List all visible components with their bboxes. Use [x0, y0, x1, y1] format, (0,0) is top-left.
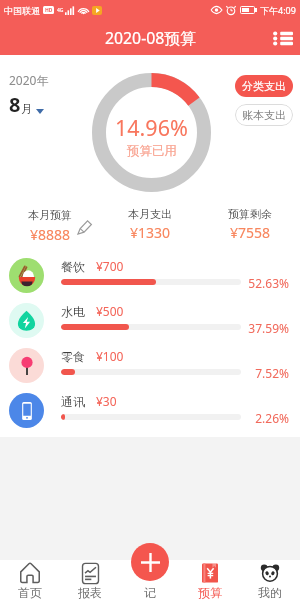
- staticText: 52.63%: [248, 275, 289, 291]
- button[interactable]: 水电: [0, 298, 300, 343]
- button[interactable]: 预算剩余: [200, 196, 300, 253]
- staticText: 中国联通: [4, 5, 40, 16]
- button[interactable]: 本月支出: [100, 196, 200, 253]
- button[interactable]: 分类支出: [235, 75, 293, 97]
- staticText: 分类支出: [242, 79, 286, 93]
- staticText: 首页: [18, 585, 42, 600]
- staticText: 下午4:09: [260, 4, 296, 16]
- button[interactable]: 零食: [0, 343, 300, 388]
- staticText: 2.26%: [255, 410, 289, 426]
- staticText: 本月预算: [28, 208, 72, 222]
- staticText: 账本支出: [242, 108, 286, 122]
- staticText: 我的: [258, 585, 282, 600]
- button[interactable]: Menu: [269, 24, 297, 52]
- staticText: 4G: [57, 7, 64, 14]
- staticText: 本月支出: [128, 207, 172, 221]
- button[interactable]: 首页: [0, 560, 60, 600]
- staticText: ¥7558: [230, 223, 271, 242]
- staticText: 通讯: [61, 394, 85, 409]
- staticText: 8: [9, 91, 21, 118]
- button[interactable]: 预算: [180, 560, 240, 600]
- staticText: HD: [45, 7, 53, 14]
- staticText: ¥100: [96, 348, 124, 364]
- staticText: 餐饮: [61, 259, 85, 274]
- button[interactable]: 餐饮: [0, 253, 300, 298]
- staticText: 2020年: [9, 72, 49, 88]
- staticText: ¥8888: [30, 225, 71, 244]
- button[interactable]: 通讯: [0, 388, 300, 433]
- button[interactable]: 报表: [60, 560, 120, 600]
- staticText: ¥1330: [130, 223, 171, 242]
- staticText: 预算: [198, 585, 222, 600]
- staticText: 37.59%: [248, 320, 289, 336]
- staticText: 零食: [61, 349, 85, 364]
- staticText: 水电: [61, 304, 85, 319]
- button[interactable]: 记: [120, 560, 180, 600]
- staticText: 2020-08预算: [105, 27, 196, 49]
- staticText: 预算剩余: [228, 207, 272, 221]
- staticText: 预算已用: [127, 143, 177, 159]
- staticText: ¥700: [96, 258, 124, 274]
- button[interactable]: 我的: [240, 560, 300, 600]
- staticText: 7.52%: [255, 365, 289, 381]
- button[interactable]: Add record: [131, 543, 169, 581]
- staticText: ¥500: [96, 303, 124, 319]
- staticText: 14.96%: [115, 113, 188, 142]
- staticText: 报表: [78, 585, 102, 600]
- staticText: ¥30: [96, 393, 117, 409]
- staticText: 月: [21, 102, 32, 116]
- button[interactable]: 账本支出: [235, 104, 293, 126]
- staticText: 记: [144, 585, 156, 600]
- button[interactable]: 本月预算: [0, 196, 100, 253]
